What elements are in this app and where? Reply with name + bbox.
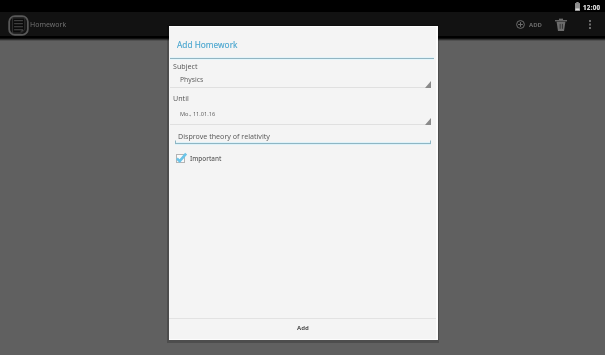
button[interactable]: Delete bbox=[550, 12, 572, 37]
button[interactable]: Add bbox=[169, 319, 436, 339]
button[interactable]: Important bbox=[174, 152, 224, 165]
button[interactable]: Mo., 11.01.16 bbox=[170, 107, 431, 125]
staticText: Mo., 11.01.16 bbox=[180, 110, 216, 118]
button[interactable]: ADD bbox=[512, 12, 546, 37]
button[interactable]: Homework bbox=[7, 14, 29, 36]
button[interactable]: More options bbox=[579, 12, 601, 37]
staticText: Until bbox=[173, 93, 189, 103]
button[interactable]: Physics bbox=[170, 72, 431, 88]
staticText: ADD bbox=[529, 21, 542, 29]
staticText: Disprove theory of relativity bbox=[178, 131, 270, 141]
staticText: Add bbox=[297, 324, 309, 332]
staticText: 12:00 bbox=[583, 3, 601, 11]
button[interactable]: Disprove theory of relativity bbox=[175, 130, 431, 145]
staticText: Homework bbox=[30, 20, 67, 30]
staticText: Add Homework bbox=[177, 39, 238, 50]
staticText: Important bbox=[190, 154, 222, 163]
staticText: Subject bbox=[173, 61, 198, 71]
staticText: Physics bbox=[180, 75, 204, 84]
